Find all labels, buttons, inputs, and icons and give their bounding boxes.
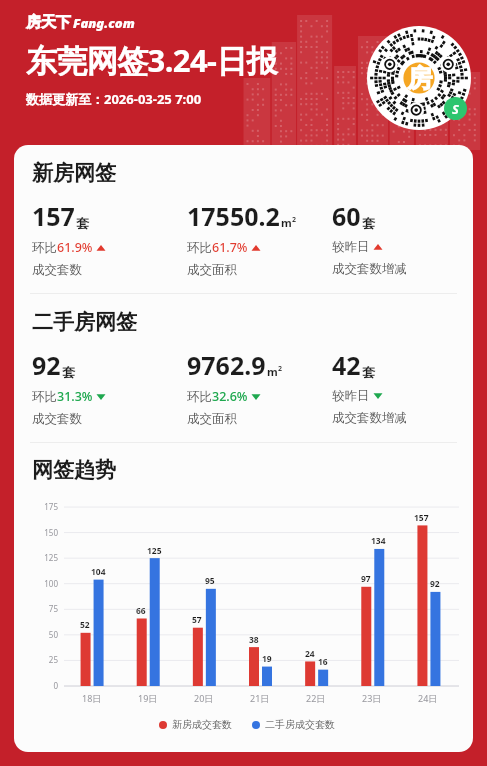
staticText: 95 [205,575,215,587]
staticText: 成交面积 [187,411,237,427]
staticText: S [452,100,459,118]
staticText: 房 [407,63,432,94]
staticText: 9762.9 [187,348,266,382]
staticText: 52 [80,619,90,631]
staticText: 16 [318,656,328,668]
staticText: 24 [305,648,315,660]
staticText: 套 [62,364,75,380]
staticText: 22日 [306,692,326,704]
button[interactable]: 9762.9 [187,348,332,427]
staticText: 92 [32,348,61,382]
staticText: 66 [136,605,146,617]
staticText: 75 [48,603,58,614]
staticText: 24日 [418,692,438,704]
staticText: 60 [332,199,361,233]
staticText: 19 [262,653,272,665]
staticText: 25 [48,654,58,665]
staticText: 环比 [32,240,57,256]
staticText: 环比 [187,389,212,405]
staticText: 套 [362,215,375,231]
staticText: 二手房网签 [32,309,137,335]
button[interactable]: 房天下 [26,13,135,32]
button[interactable]: 新房成交套数 [159,718,232,731]
staticText: 134 [371,535,386,547]
staticText: 房天下 [26,13,71,32]
staticText: 104 [91,566,106,578]
staticText: 125 [44,552,58,563]
staticText: 17550.2 [187,199,280,233]
staticText: 97 [361,573,371,585]
button[interactable]: 17550.2 [187,199,332,278]
staticText: 东莞网签3.24-日报 [26,39,278,81]
staticText: 42 [332,348,361,382]
staticText: 二手房成交套数 [265,718,335,731]
staticText: 61.9% [57,239,93,256]
staticText: 套 [362,364,375,380]
staticText: 环比 [32,389,57,405]
staticText: 20日 [194,692,214,704]
button[interactable]: 扫描二维码关注 [367,26,471,130]
staticText: 新房网签 [32,160,116,186]
staticText: 92 [430,578,440,590]
staticText: 19日 [138,692,158,704]
staticText: 2 [278,364,283,374]
staticText: 157 [32,199,75,233]
staticText: 成交套数增减 [332,410,407,426]
staticText: 新房成交套数 [172,718,232,731]
staticText: 成交套数 [32,411,82,427]
staticText: m [281,215,292,230]
staticText: 23日 [362,692,382,704]
staticText: 21日 [250,692,270,704]
staticText: 50 [48,629,58,640]
staticText: 网签趋势 [32,457,116,483]
staticText: 150 [44,527,58,538]
button[interactable]: 92 [32,348,187,427]
button[interactable]: 157 [32,199,187,278]
staticText: 57 [192,614,202,626]
staticText: 175 [44,501,58,512]
staticText: 2 [292,215,297,225]
staticText: 成交套数 [32,262,82,278]
staticText: 157 [414,512,429,524]
staticText: 18日 [82,692,102,704]
staticText: 成交套数增减 [332,261,407,277]
staticText: m [267,364,278,379]
button[interactable]: 60 [332,199,463,277]
staticText: 环比 [187,240,212,256]
staticText: 100 [44,578,58,589]
staticText: 套 [76,215,89,231]
staticText: 32.6% [212,388,248,405]
staticText: 38 [249,634,259,646]
staticText: Fang.com [73,14,135,32]
staticText: 125 [147,545,162,557]
staticText: 0 [53,680,58,691]
staticText: 数据更新至：2026-03-25 7:00 [26,90,202,108]
staticText: 较昨日 [332,388,370,404]
staticText: 较昨日 [332,239,370,255]
staticText: 31.3% [57,388,93,405]
staticText: 成交面积 [187,262,237,278]
button[interactable]: 42 [332,348,463,426]
staticText: 61.7% [212,239,248,256]
button[interactable]: 二手房成交套数 [252,718,335,731]
